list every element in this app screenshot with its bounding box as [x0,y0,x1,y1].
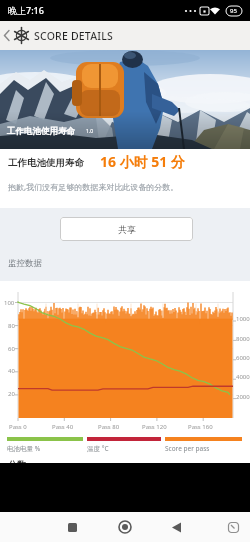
staticText: 80 [8,322,15,330]
staticText: 40 [8,367,15,375]
button[interactable] [218,512,248,542]
button[interactable] [0,21,16,50]
staticText: Pass 120 [142,423,167,431]
staticText: 2000 [236,393,250,401]
button[interactable] [57,512,87,542]
staticText: SCORE DETAILS [34,29,113,43]
staticText: 16 小时 51 分 [100,152,185,171]
staticText: 4000 [236,373,250,381]
staticText: 20 [8,390,15,398]
staticText: 电池电量 % [7,444,41,453]
button[interactable]: 工作电池使用寿命 [0,50,250,149]
button[interactable]: 共享 [60,217,193,241]
staticText: 分数 [8,459,26,463]
staticText: Pass 80 [98,423,120,431]
button[interactable] [161,512,191,542]
staticText: 抱歉,我们没有足够的数据来对比此设备的分数。 [8,181,179,192]
staticText: 100 [4,299,15,307]
staticText: 1.0 [86,128,94,135]
staticText: 工作电池使用寿命 [8,157,84,169]
staticText: 晚上7:16 [8,4,44,16]
staticText: Pass 160 [188,423,213,431]
staticText: 10000 [236,315,250,323]
staticText: 6000 [236,354,250,362]
button[interactable] [110,512,140,542]
staticText: 温度 °C [87,444,109,453]
staticText: Score per pass [165,444,210,453]
staticText: 监控数据 [8,258,42,269]
staticText: 95 [230,7,237,15]
staticText: Pass 0 [9,423,27,431]
staticText: 共享 [118,224,136,235]
staticText: Pass 40 [52,423,74,431]
staticText: 8000 [236,335,250,343]
staticText: 60 [8,345,15,353]
staticText: 工作电池使用寿命 [7,126,75,137]
